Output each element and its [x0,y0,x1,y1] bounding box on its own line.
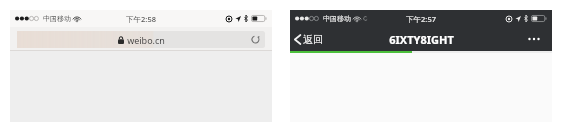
button[interactable]: 返回 [294,33,323,46]
staticText: 下午2:58 [126,14,156,24]
button[interactable]: More options [524,31,544,47]
staticText: 6IXTY8IGHT [389,32,454,47]
button[interactable]: Reload [249,33,262,46]
staticText: 返回 [303,33,323,46]
staticText: 中国移动 [43,14,71,23]
button[interactable]: weibo.cn [17,31,265,48]
staticText: weibo.cn [127,34,165,46]
staticText: 中国移动 [323,14,351,23]
staticText: 下午2:57 [406,14,436,24]
